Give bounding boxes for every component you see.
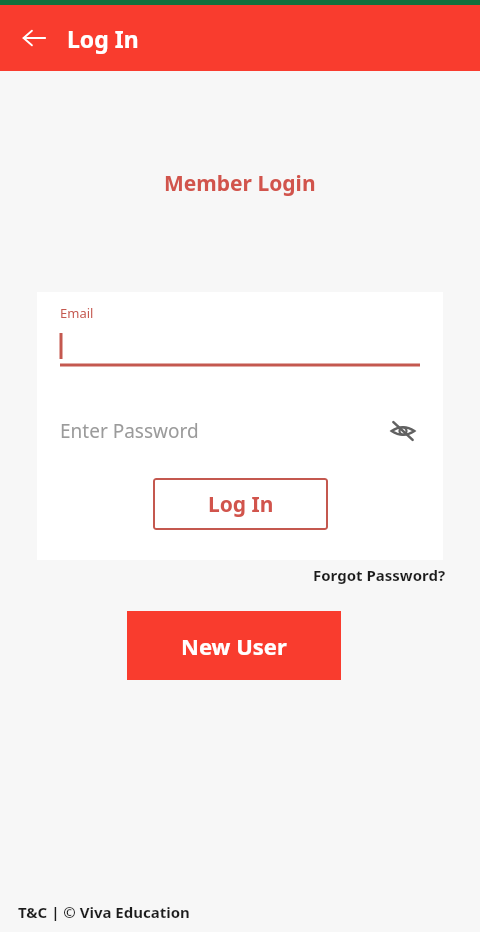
- button[interactable]: Forgot Password?: [313, 565, 446, 585]
- button[interactable]: Log In: [153, 478, 328, 530]
- staticText: T&C | © Viva Education: [18, 902, 190, 922]
- staticText: New User: [181, 631, 287, 661]
- staticText: Log In: [67, 23, 139, 54]
- staticText: Enter Password: [60, 418, 199, 444]
- button[interactable]: [60, 330, 420, 367]
- button[interactable]: Enter Password: [60, 411, 420, 451]
- staticText: Forgot Password?: [313, 565, 446, 585]
- button[interactable]: T&C | © Viva Education: [18, 902, 190, 922]
- staticText: Log In: [208, 490, 274, 519]
- staticText: Member Login: [164, 169, 316, 198]
- button[interactable]: Back: [11, 15, 57, 61]
- button[interactable]: Show password: [386, 414, 420, 448]
- button[interactable]: New User: [127, 611, 341, 680]
- staticText: Email: [60, 304, 94, 322]
